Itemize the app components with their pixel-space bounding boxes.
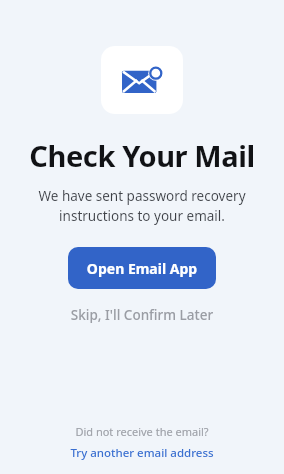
staticText: We have sent password recovery instructi… [34, 187, 250, 225]
staticText: Did not receive the email? [0, 424, 284, 439]
staticText: Open Email App [68, 259, 216, 278]
staticText: Skip, I'll Confirm Later [16, 306, 268, 324]
button[interactable]: Try another email address [0, 442, 284, 464]
other: New mail [122, 67, 162, 93]
button[interactable]: Skip, I'll Confirm Later [0, 299, 284, 331]
button[interactable]: Open Email App [68, 247, 216, 289]
staticText: Check Your Mail [0, 136, 284, 175]
staticText: Try another email address [10, 445, 274, 461]
